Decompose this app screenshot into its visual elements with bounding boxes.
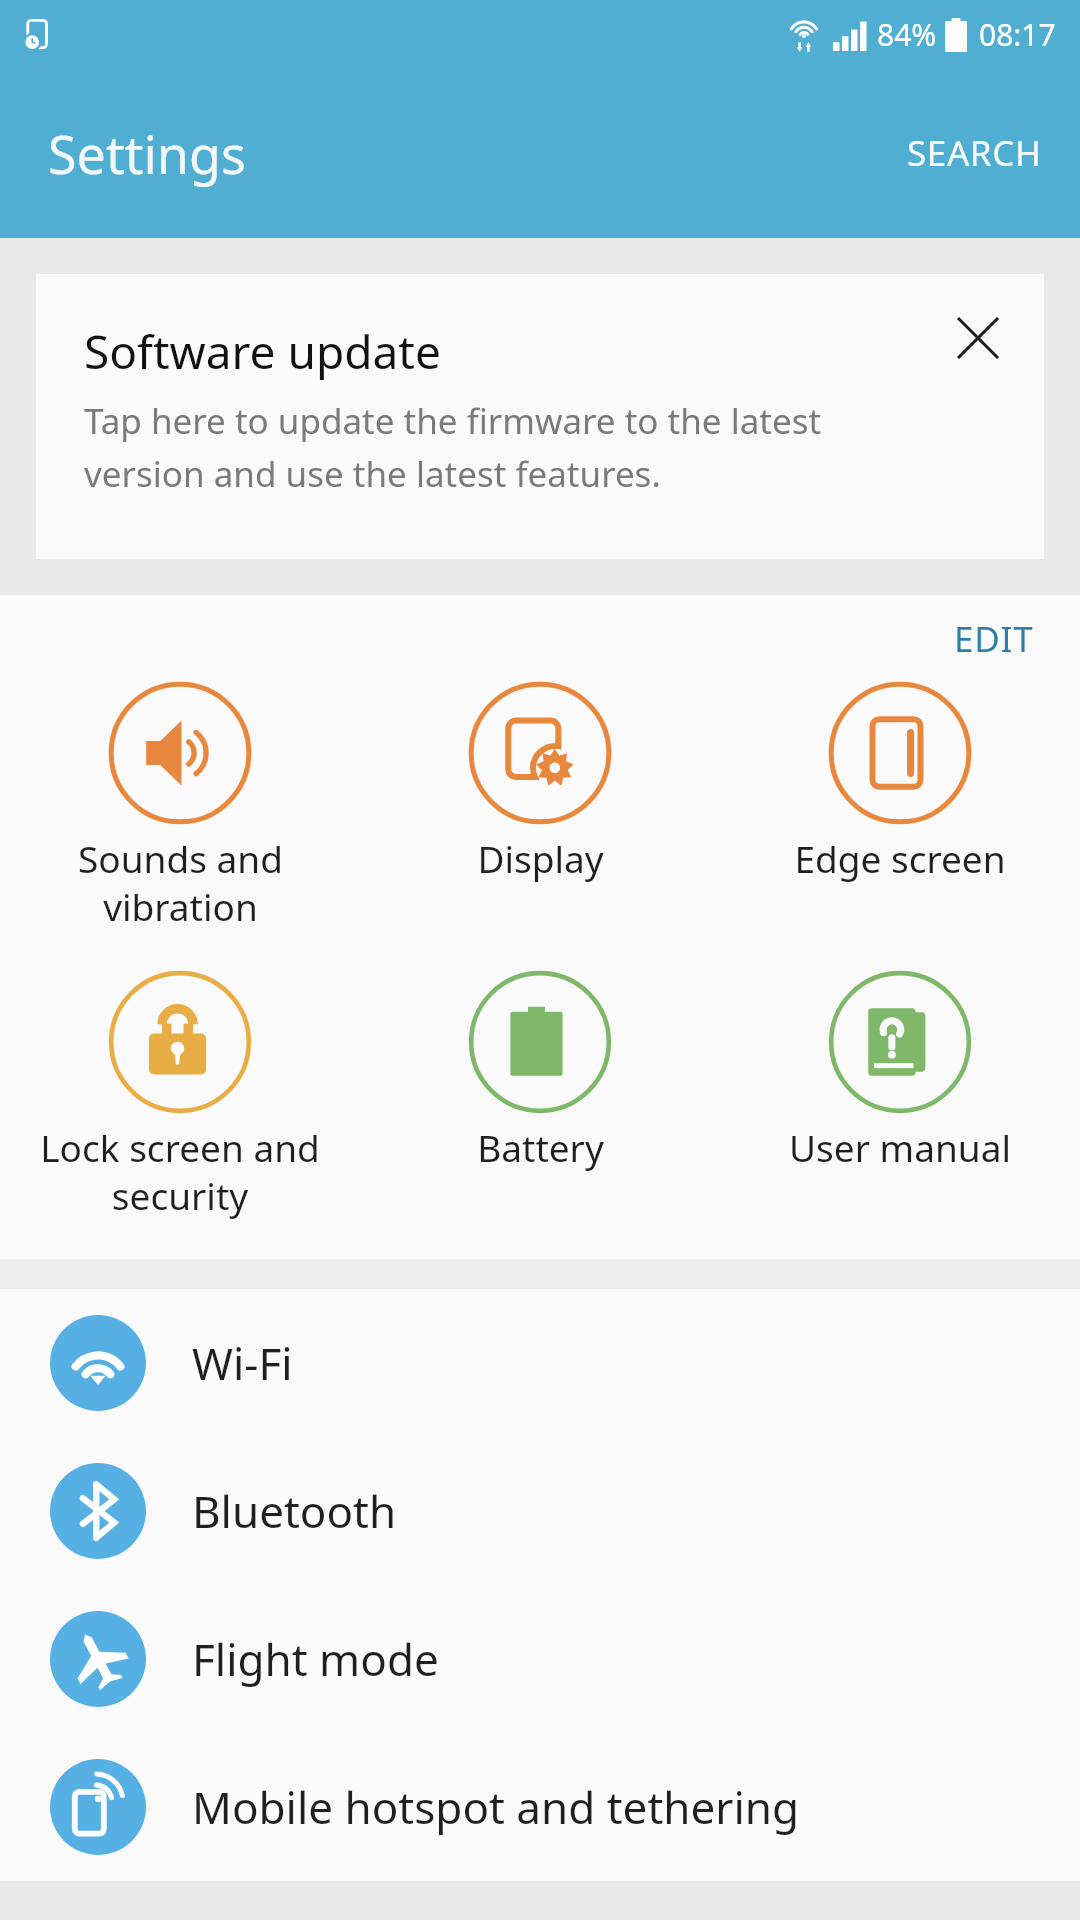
button[interactable]: User manual [720, 958, 1080, 1184]
button[interactable]: Close [934, 294, 1022, 382]
staticText: Sounds and vibration [78, 833, 283, 932]
staticText: Bluetooth [192, 1481, 397, 1541]
button[interactable]: Bluetooth [0, 1437, 1080, 1585]
staticText: 84% [877, 14, 937, 55]
button[interactable]: SEARCH [869, 105, 1080, 201]
button[interactable]: Edge screen [720, 669, 1080, 895]
button[interactable]: Battery [360, 958, 720, 1184]
staticText: Display [477, 833, 604, 883]
button[interactable]: Wi-Fi [0, 1289, 1080, 1437]
staticText: 08:17 [979, 14, 1056, 55]
staticText: EDIT [954, 615, 1034, 663]
staticText: Mobile hotspot and tethering [192, 1777, 800, 1837]
staticText: Settings [48, 118, 246, 189]
staticText: Battery [477, 1122, 604, 1172]
button[interactable]: Display [360, 669, 720, 895]
staticText: Tap here to update the firmware to the l… [84, 397, 822, 497]
button[interactable]: EDIT [914, 595, 1080, 669]
staticText: Lock screen and security [40, 1122, 320, 1221]
staticText: Software update [84, 320, 441, 383]
button[interactable]: Sounds and vibration [0, 669, 360, 944]
button[interactable]: Mobile hotspot and tethering [0, 1733, 1080, 1881]
staticText: Edge screen [794, 833, 1006, 883]
button[interactable]: Software update [36, 274, 1044, 559]
staticText: Flight mode [192, 1629, 439, 1689]
staticText: User manual [789, 1122, 1011, 1172]
button[interactable]: Flight mode [0, 1585, 1080, 1733]
button[interactable]: Lock screen and security [0, 958, 360, 1233]
staticText: SEARCH [907, 129, 1042, 177]
staticText: Wi-Fi [192, 1333, 293, 1393]
